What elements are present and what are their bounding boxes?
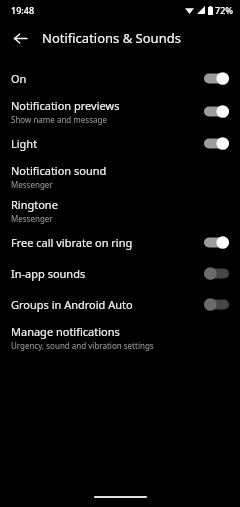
staticText: On	[11, 71, 27, 86]
button[interactable]: Manage notifications	[0, 320, 240, 354]
button[interactable]: Switch on	[204, 136, 229, 151]
button[interactable]: In-app sounds	[0, 258, 240, 289]
staticText: 19:48	[11, 4, 35, 16]
button[interactable]: Notification previews	[0, 94, 240, 128]
staticText: Ringtone	[11, 197, 58, 212]
button[interactable]: Light	[0, 128, 240, 159]
button[interactable]: Switch off	[204, 297, 229, 312]
button[interactable]: Notification sound	[0, 159, 240, 193]
staticText: Messenger	[11, 213, 53, 224]
staticText: Show name and message	[11, 114, 107, 125]
button[interactable]: Switch on	[204, 71, 229, 86]
button[interactable]: Back	[7, 25, 33, 51]
staticText: Manage notifications	[11, 324, 120, 339]
staticText: In-app sounds	[11, 266, 86, 281]
button[interactable]: Switch off	[204, 266, 229, 281]
button[interactable]: Free call vibrate on ring	[0, 227, 240, 258]
staticText: 72%	[215, 4, 233, 16]
staticText: Free call vibrate on ring	[11, 235, 133, 250]
button[interactable]: Switch on	[204, 104, 229, 119]
staticText: Urgency, sound and vibration settings	[11, 340, 154, 351]
button[interactable]: Switch on	[204, 235, 229, 250]
button[interactable]: Groups in Android Auto	[0, 289, 240, 320]
staticText: Notification sound	[11, 163, 107, 178]
staticText: Groups in Android Auto	[11, 297, 133, 312]
button[interactable]: On	[0, 63, 240, 94]
staticText: Messenger	[11, 179, 53, 190]
staticText: Notification previews	[11, 98, 120, 113]
staticText: Light	[11, 136, 38, 151]
staticText: Notifications & Sounds	[42, 29, 181, 47]
button[interactable]: Ringtone	[0, 193, 240, 227]
